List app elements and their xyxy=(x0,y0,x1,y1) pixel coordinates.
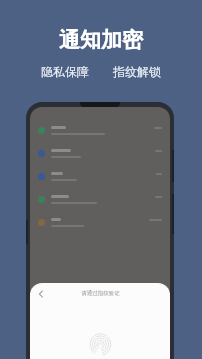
button[interactable]: 指纹解锁 xyxy=(86,329,114,357)
button[interactable]: 返回 xyxy=(32,285,49,302)
staticText: 指纹解锁 xyxy=(113,64,161,79)
button[interactable] xyxy=(38,149,162,158)
button[interactable] xyxy=(38,172,162,181)
button[interactable] xyxy=(38,195,162,204)
staticText: 请通过指纹验证 xyxy=(81,290,120,297)
button[interactable] xyxy=(38,218,162,227)
staticText: 隐私保障 xyxy=(41,64,89,79)
button[interactable] xyxy=(38,126,162,135)
staticText: 通知加密 xyxy=(59,27,143,53)
